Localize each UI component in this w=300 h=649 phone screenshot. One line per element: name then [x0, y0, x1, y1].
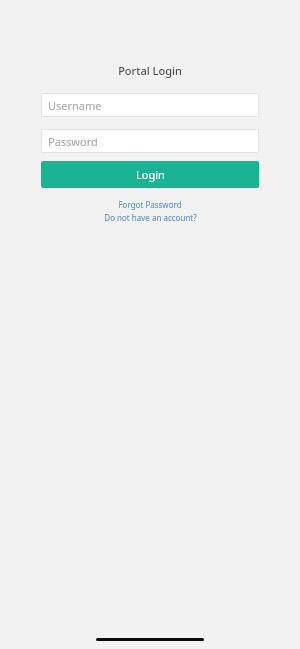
- staticText: Forgot Password: [118, 199, 182, 210]
- button[interactable]: Password: [41, 129, 259, 153]
- staticText: Do not have an account?: [104, 212, 197, 223]
- button[interactable]: Login: [41, 161, 259, 188]
- button[interactable]: Username: [41, 93, 259, 117]
- staticText: Portal Login: [118, 63, 182, 78]
- staticText: Username: [48, 98, 102, 113]
- staticText: Login: [136, 167, 165, 182]
- button[interactable]: Forgot Password: [41, 199, 259, 210]
- staticText: Password: [48, 134, 98, 149]
- button[interactable]: Do not have an account?: [41, 212, 259, 223]
